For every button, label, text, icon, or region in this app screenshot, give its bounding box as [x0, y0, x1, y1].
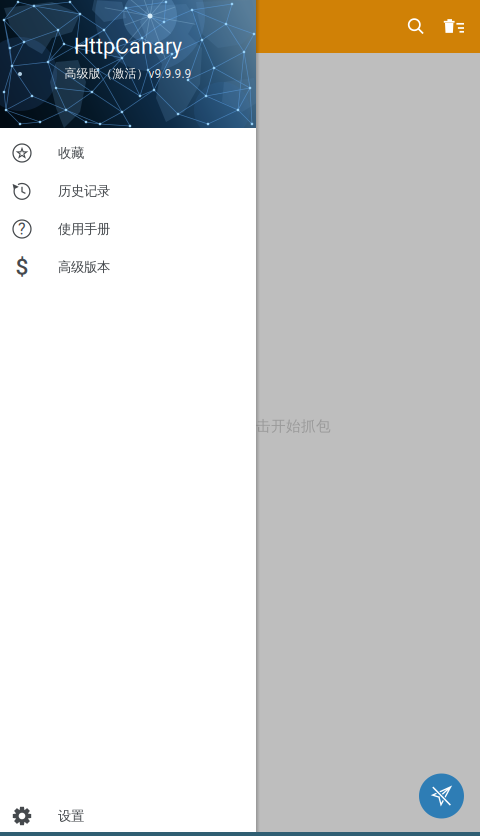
staticText: 高级版本: [58, 259, 110, 275]
button[interactable]: Clear all: [439, 9, 473, 43]
button[interactable]: 设置: [0, 797, 256, 835]
button[interactable]: ?: [0, 210, 256, 248]
staticText: 历史记录: [58, 183, 110, 199]
staticText: 设置: [58, 808, 84, 824]
staticText: ?: [18, 220, 26, 238]
button[interactable]: $: [0, 248, 256, 286]
button[interactable]: Start capture: [419, 773, 464, 818]
staticText: $: [15, 254, 28, 280]
button[interactable]: 历史记录: [0, 172, 256, 210]
staticText: 收藏: [58, 145, 84, 161]
staticText: 点击开始抓包: [241, 417, 331, 435]
button[interactable]: 收藏: [0, 134, 256, 172]
staticText: 使用手册: [58, 221, 110, 237]
staticText: 高级版（激活）v9.9.9.9: [64, 66, 191, 81]
staticText: HttpCanary: [74, 34, 182, 59]
button[interactable]: Search: [398, 9, 432, 43]
